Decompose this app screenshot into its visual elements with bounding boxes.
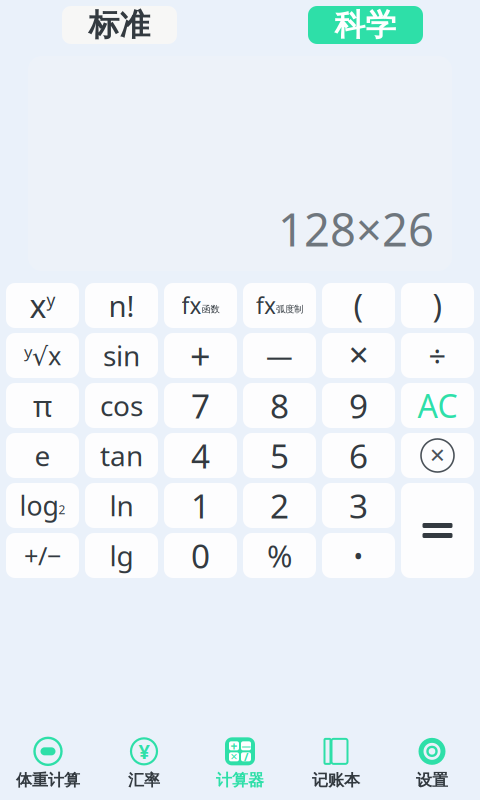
button[interactable]: 1 <box>164 483 237 528</box>
staticText: ln <box>109 487 133 524</box>
staticText: 记账本 <box>312 770 360 790</box>
staticText: • <box>353 539 363 572</box>
button[interactable]: sin <box>85 333 158 378</box>
button[interactable]: log <box>6 483 79 528</box>
staticText: 7 <box>191 383 210 428</box>
staticText: fx <box>256 290 276 320</box>
staticText: y <box>46 289 55 312</box>
button[interactable]: 0 <box>164 533 237 578</box>
button[interactable]: cos <box>85 383 158 428</box>
button[interactable]: 5 <box>243 433 316 478</box>
button[interactable]: π <box>6 383 79 428</box>
button[interactable]: AC <box>401 383 474 428</box>
staticText: log <box>19 488 58 523</box>
staticText: ) <box>432 284 442 327</box>
staticText: / <box>244 750 248 764</box>
button[interactable]: fx <box>164 283 237 328</box>
staticText: 6 <box>349 433 368 478</box>
staticText: % <box>267 535 292 576</box>
staticText: e <box>34 437 50 474</box>
button[interactable]: ( <box>322 283 395 328</box>
staticText: ¥ <box>138 738 149 765</box>
button[interactable]: 3 <box>322 483 395 528</box>
staticText: 2 <box>58 502 65 518</box>
button[interactable]: 7 <box>164 383 237 428</box>
staticText: cos <box>100 387 143 424</box>
staticText: 1 <box>191 483 210 528</box>
button[interactable]: 标准 <box>62 6 177 44</box>
button[interactable]: ʸ√x <box>6 333 79 378</box>
staticText: 4 <box>191 433 210 478</box>
staticText: +/− <box>24 539 61 572</box>
staticText: 5 <box>270 433 289 478</box>
button[interactable]: Equals <box>401 483 474 578</box>
button[interactable]: 6 <box>322 433 395 478</box>
staticText: 体重计算 <box>16 770 80 790</box>
staticText: 2 <box>270 483 289 528</box>
button[interactable]: ) <box>401 283 474 328</box>
button[interactable]: + <box>164 333 237 378</box>
button[interactable]: • <box>322 533 395 578</box>
staticText: ʸ√x <box>24 339 61 372</box>
button[interactable]: 记账本 <box>288 735 384 790</box>
staticText: fx <box>181 290 201 320</box>
staticText: π <box>33 386 52 425</box>
staticText: 设置 <box>416 770 448 790</box>
button[interactable]: tan <box>85 433 158 478</box>
button[interactable]: 2 <box>243 483 316 528</box>
button[interactable]: + <box>192 735 288 790</box>
staticText: ✕ <box>347 340 369 371</box>
button[interactable]: +/− <box>6 533 79 578</box>
button[interactable]: fx <box>243 283 316 328</box>
staticText: 弧度制 <box>276 303 303 315</box>
staticText: 标准 <box>88 6 150 44</box>
staticText: — <box>241 740 250 752</box>
staticText: 128×26 <box>278 199 434 259</box>
button[interactable]: e <box>6 433 79 478</box>
button[interactable]: 科学 <box>308 6 423 44</box>
staticText: AC <box>417 384 457 427</box>
button[interactable]: lg <box>85 533 158 578</box>
button[interactable]: 9 <box>322 383 395 428</box>
staticText: ÷ <box>428 335 446 376</box>
button[interactable]: % <box>243 533 316 578</box>
button[interactable]: ÷ <box>401 333 474 378</box>
staticText: ✕ <box>230 752 238 762</box>
staticText: ✕ <box>429 444 446 467</box>
button[interactable]: ¥ <box>96 735 192 790</box>
staticText: sin <box>103 337 140 374</box>
button[interactable]: ln <box>85 483 158 528</box>
button[interactable]: 设置 <box>384 735 480 790</box>
staticText: 0 <box>191 533 210 578</box>
staticText: — <box>266 338 293 373</box>
button[interactable]: x <box>6 283 79 328</box>
staticText: 8 <box>270 383 289 428</box>
staticText: 9 <box>349 383 368 428</box>
staticText: + <box>190 332 211 379</box>
staticText: ( <box>353 284 363 327</box>
button[interactable]: 体重计算 <box>0 735 96 790</box>
button[interactable]: — <box>243 333 316 378</box>
staticText: lg <box>109 537 133 574</box>
staticText: tan <box>100 437 143 474</box>
staticText: + <box>230 738 237 754</box>
button[interactable]: ✕ <box>322 333 395 378</box>
staticText: 计算器 <box>216 770 264 790</box>
button[interactable]: n! <box>85 283 158 328</box>
button[interactable]: Delete <box>401 433 474 478</box>
staticText: n! <box>108 286 134 325</box>
staticText: x <box>29 284 46 327</box>
staticText: 汇率 <box>128 770 160 790</box>
button[interactable]: 8 <box>243 383 316 428</box>
staticText: 科学 <box>334 6 396 44</box>
staticText: 函数 <box>201 303 219 315</box>
staticText: 3 <box>349 483 368 528</box>
button[interactable]: 4 <box>164 433 237 478</box>
